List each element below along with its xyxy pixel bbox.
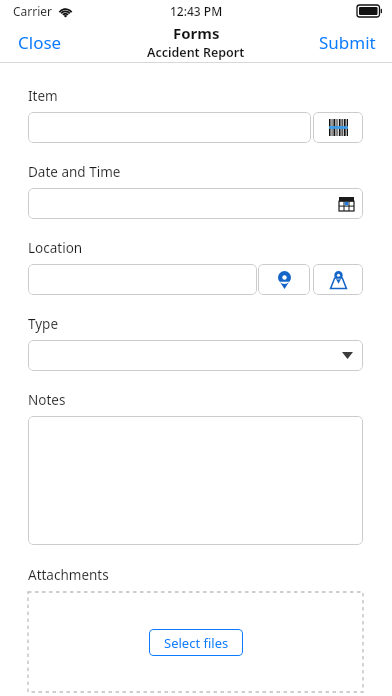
button[interactable]: Select files (149, 629, 243, 656)
staticText: Submit (319, 31, 376, 54)
staticText: Notes (28, 391, 66, 409)
button[interactable] (28, 264, 257, 295)
button[interactable]: Scan barcode (313, 112, 363, 143)
button[interactable]: Pick date and time (28, 188, 363, 219)
staticText: Select files (164, 634, 229, 652)
button[interactable]: Close (0, 25, 74, 60)
staticText: Item (28, 87, 58, 105)
staticText: Accident Report (147, 44, 245, 61)
staticText: Close (18, 31, 62, 54)
button[interactable]: Choose location on map (313, 264, 363, 295)
button[interactable]: Submit (307, 25, 392, 60)
staticText: 12:43 PM (170, 3, 223, 19)
button[interactable]: Use current location (258, 264, 310, 295)
button[interactable] (28, 112, 311, 143)
staticText: Carrier (13, 3, 53, 19)
staticText: Attachments (28, 566, 109, 584)
button[interactable]: Select type (28, 340, 363, 371)
staticText: Date and Time (28, 163, 121, 181)
staticText: Forms (173, 23, 220, 43)
staticText: Type (28, 315, 59, 333)
staticText: Location (28, 239, 83, 257)
button[interactable] (28, 416, 363, 545)
